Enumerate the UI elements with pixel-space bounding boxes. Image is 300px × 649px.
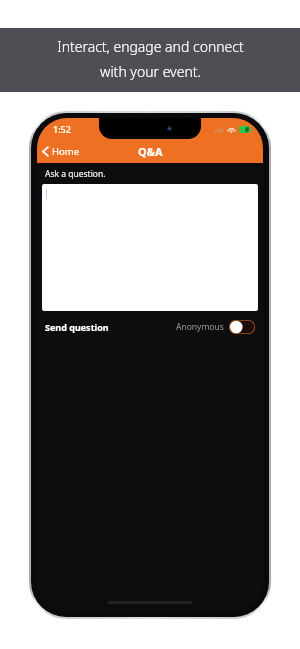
staticText: Interact, engage and connect — [57, 37, 244, 56]
staticText: Q&A — [138, 144, 163, 159]
button[interactable]: Home — [37, 140, 89, 163]
staticText: Anonymous — [176, 321, 224, 333]
button[interactable]: Anonymous toggle — [229, 320, 255, 334]
button[interactable]: Send question — [45, 319, 109, 335]
staticText: 1:52 — [53, 123, 71, 135]
staticText: Home — [52, 145, 80, 158]
staticText: with your event. — [100, 62, 201, 81]
staticText: Ask a question. — [45, 168, 106, 180]
